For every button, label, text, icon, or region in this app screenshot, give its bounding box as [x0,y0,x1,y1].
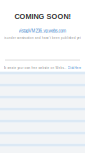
button[interactable]: Click Here [67,67,81,70]
staticText: Click Here [67,67,81,70]
staticText: vistapVM236_vp.webs.com [18,28,66,33]
staticText: is under construction and hasn't been pu… [4,36,81,39]
button[interactable]: vistapVM236_vp.webs.com [18,28,66,33]
staticText: COMING SOON! [14,12,70,20]
staticText: To create your own free website on Websp… [3,67,66,70]
